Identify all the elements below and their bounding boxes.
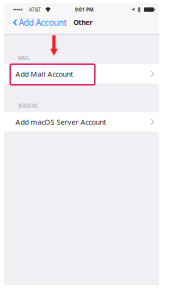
button[interactable]: Add Mail Account <box>4 64 159 84</box>
staticText: Add Mail Account <box>16 69 74 79</box>
button[interactable]: Add Account <box>8 15 70 29</box>
button[interactable]: Add macOS Server Account <box>4 112 159 132</box>
staticText: Add Account <box>19 17 67 28</box>
staticText: MAIL <box>18 55 29 61</box>
staticText: AT&T <box>29 6 41 13</box>
staticText: SERVERS <box>18 103 37 109</box>
staticText: Add macOS Server Account <box>16 117 107 127</box>
staticText: 9:01 PM <box>75 6 94 13</box>
staticText: Other <box>73 18 92 27</box>
